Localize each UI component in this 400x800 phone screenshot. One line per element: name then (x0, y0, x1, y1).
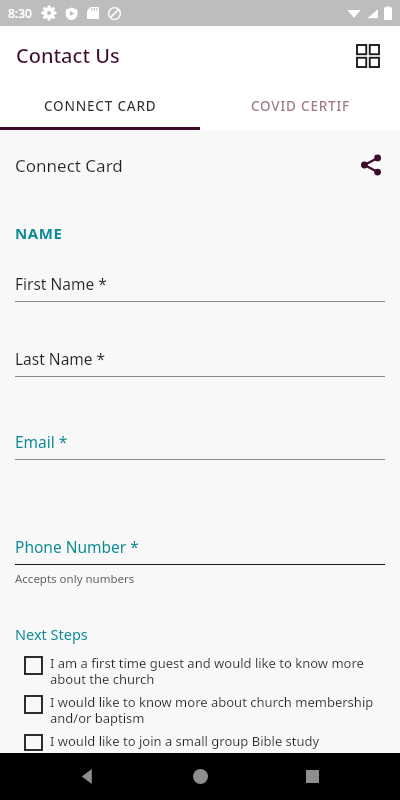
button[interactable]: Recent apps (288, 753, 336, 800)
staticText: COVID CERTIF (251, 97, 350, 115)
staticText: Next Steps (15, 624, 88, 644)
button[interactable]: Email * (0, 431, 400, 460)
staticText: I would like to join a small group Bible… (50, 732, 320, 750)
button[interactable]: Back (64, 753, 112, 800)
button[interactable]: Grid view (348, 36, 388, 76)
button[interactable]: First Name * (0, 273, 400, 302)
staticText: NAME (15, 223, 63, 243)
button[interactable]: Last Name * (0, 348, 400, 377)
button[interactable]: COVID CERTIF (200, 85, 400, 127)
button[interactable]: Home (176, 753, 224, 800)
staticText: Email * (15, 431, 68, 452)
staticText: CONNECT CARD (44, 97, 157, 115)
button[interactable]: I am a first time guest and would like t… (0, 651, 400, 690)
staticText: Contact Us (16, 42, 120, 69)
staticText: Accepts only numbers (15, 571, 135, 587)
staticText: Connect Card (15, 154, 123, 177)
button[interactable]: Share (352, 146, 390, 184)
button[interactable]: I would like to join a small group Bible… (0, 729, 400, 753)
staticText: 8:30 (8, 5, 32, 21)
staticText: Phone Number * (15, 536, 139, 557)
staticText: Last Name * (15, 348, 106, 369)
staticText: First Name * (15, 273, 107, 294)
button[interactable]: Phone Number * (0, 536, 400, 565)
staticText: I am a first time guest and would like t… (50, 654, 390, 687)
staticText: I would like to know more about church m… (50, 693, 390, 726)
button[interactable]: CONNECT CARD (0, 85, 200, 127)
button[interactable]: I would like to know more about church m… (0, 690, 400, 729)
